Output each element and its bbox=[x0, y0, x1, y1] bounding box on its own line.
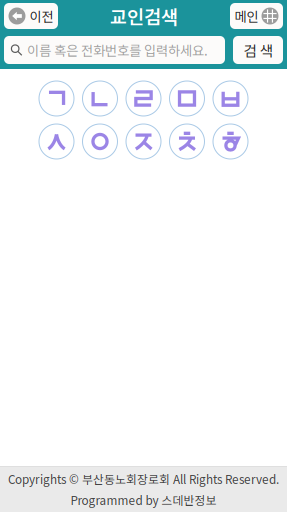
button[interactable]: ㄴ bbox=[82, 81, 117, 116]
staticText: 이름 혹은 전화번호를 입력하세요. bbox=[27, 40, 208, 60]
button[interactable]: ㄹ bbox=[126, 81, 161, 116]
button[interactable]: 메인 bbox=[230, 3, 283, 29]
staticText: 이전 bbox=[29, 6, 53, 26]
button[interactable]: ㅁ bbox=[169, 81, 204, 116]
staticText: 교인검색 bbox=[110, 2, 178, 29]
staticText: Copyrights © 부산동노회장로회 All Rights Reserve… bbox=[8, 470, 279, 487]
button[interactable]: 검 색 bbox=[233, 36, 283, 64]
staticText: Programmed by 스데반정보 bbox=[70, 491, 216, 508]
button[interactable]: ㅊ bbox=[169, 124, 204, 159]
button[interactable]: 이전 bbox=[4, 3, 58, 29]
staticText: 메인 bbox=[234, 6, 258, 26]
button[interactable]: ㅇ bbox=[82, 124, 117, 159]
button[interactable]: ㅅ bbox=[39, 124, 74, 159]
button[interactable]: ㅈ bbox=[126, 124, 161, 159]
button[interactable]: ㅂ bbox=[213, 81, 248, 116]
button[interactable]: ㅎ bbox=[213, 124, 248, 159]
staticText: 검 색 bbox=[243, 39, 272, 61]
button[interactable]: ㄱ bbox=[39, 81, 74, 116]
